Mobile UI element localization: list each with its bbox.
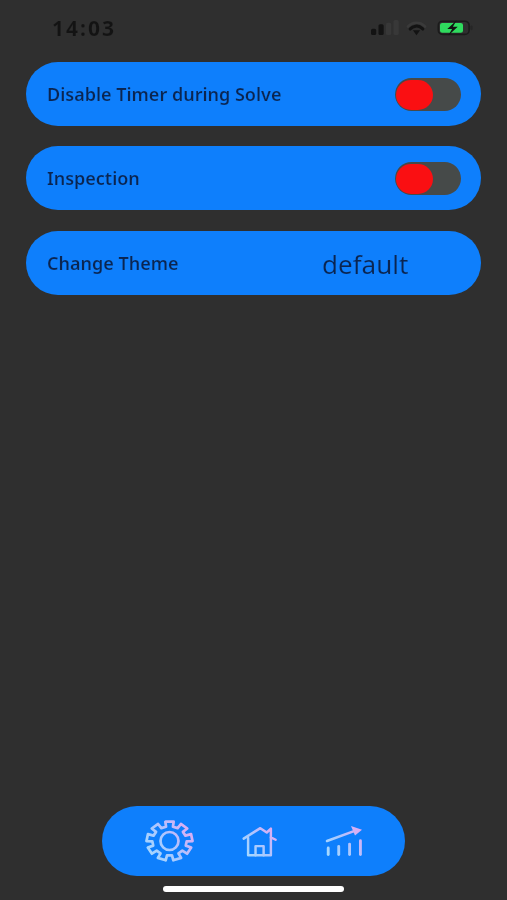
- staticText: Inspection: [47, 166, 140, 191]
- button[interactable]: Toggle: [395, 162, 461, 195]
- button[interactable]: Settings: [145, 806, 193, 876]
- button[interactable]: Home: [235, 806, 283, 876]
- staticText: default: [322, 246, 409, 281]
- button[interactable]: Toggle: [395, 78, 461, 111]
- button[interactable]: Change Theme: [26, 231, 481, 295]
- button[interactable]: Disable Timer during Solve: [26, 62, 481, 126]
- staticText: 14:03: [52, 14, 116, 43]
- staticText: Change Theme: [47, 251, 179, 276]
- button[interactable]: Statistics: [320, 806, 368, 876]
- button[interactable]: Inspection: [26, 146, 481, 210]
- staticText: Disable Timer during Solve: [47, 82, 282, 107]
